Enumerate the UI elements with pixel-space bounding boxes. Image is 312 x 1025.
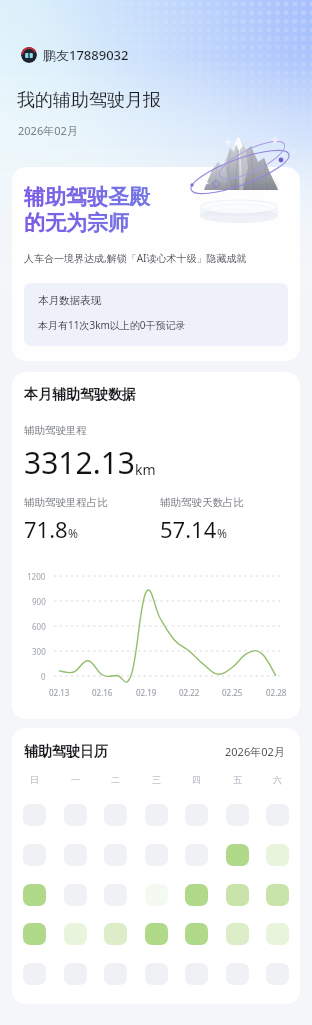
button[interactable] bbox=[64, 804, 87, 826]
staticText: 本月有11次3km以上的0干预记录 bbox=[38, 318, 186, 332]
button[interactable]: 用户头像 bbox=[21, 46, 129, 64]
button[interactable] bbox=[266, 963, 289, 985]
staticText: 900 bbox=[32, 596, 46, 607]
staticText: 人车合一境界达成,解锁「AI读心术十级」隐藏成就 bbox=[24, 251, 247, 265]
staticText: 的无为宗师 bbox=[24, 210, 129, 236]
button[interactable] bbox=[226, 844, 249, 866]
staticText: 57.14 bbox=[160, 514, 217, 544]
button[interactable] bbox=[23, 804, 46, 826]
staticText: 三 bbox=[152, 774, 161, 785]
staticText: 四 bbox=[192, 774, 201, 785]
staticText: 02.19 bbox=[136, 687, 157, 698]
staticText: 02.22 bbox=[179, 687, 200, 698]
button[interactable] bbox=[266, 884, 289, 906]
button[interactable] bbox=[185, 963, 208, 985]
other: 用户头像 bbox=[21, 47, 37, 63]
staticText: 71.8 bbox=[24, 514, 68, 544]
staticText: 1200 bbox=[27, 571, 46, 582]
staticText: 本月数据表现 bbox=[38, 294, 101, 307]
staticText: 我的辅助驾驶月报 bbox=[17, 89, 161, 112]
staticText: 辅助驾驶日历 bbox=[24, 743, 108, 761]
button[interactable] bbox=[104, 844, 127, 866]
button[interactable] bbox=[145, 884, 168, 906]
button[interactable] bbox=[104, 884, 127, 906]
staticText: 600 bbox=[32, 621, 46, 632]
staticText: 300 bbox=[32, 646, 46, 657]
staticText: 六 bbox=[273, 774, 282, 785]
button[interactable] bbox=[226, 804, 249, 826]
button[interactable] bbox=[145, 923, 168, 945]
button[interactable] bbox=[23, 884, 46, 906]
button[interactable] bbox=[185, 804, 208, 826]
staticText: 3312.13 bbox=[24, 442, 135, 483]
button[interactable] bbox=[64, 923, 87, 945]
button[interactable] bbox=[145, 804, 168, 826]
button[interactable] bbox=[64, 844, 87, 866]
staticText: 0 bbox=[41, 671, 46, 682]
staticText: 五 bbox=[233, 774, 242, 785]
button[interactable] bbox=[145, 963, 168, 985]
staticText: km bbox=[135, 460, 156, 479]
button[interactable] bbox=[266, 804, 289, 826]
button[interactable]: 本月数据表现 bbox=[24, 283, 288, 346]
button[interactable] bbox=[23, 923, 46, 945]
button[interactable] bbox=[104, 963, 127, 985]
button[interactable] bbox=[226, 884, 249, 906]
staticText: 02.28 bbox=[266, 687, 287, 698]
staticText: 一 bbox=[71, 774, 80, 785]
staticText: 二 bbox=[111, 774, 120, 785]
staticText: 2026年02月 bbox=[18, 123, 78, 138]
button[interactable] bbox=[23, 963, 46, 985]
staticText: 本月辅助驾驶数据 bbox=[24, 386, 136, 404]
staticText: 02.25 bbox=[222, 687, 243, 698]
staticText: 辅助驾驶里程 bbox=[24, 424, 87, 437]
button[interactable] bbox=[226, 963, 249, 985]
button[interactable] bbox=[185, 884, 208, 906]
staticText: 鹏友17889032 bbox=[43, 46, 129, 64]
button[interactable] bbox=[185, 844, 208, 866]
staticText: 辅助驾驶圣殿 bbox=[24, 184, 150, 210]
button[interactable] bbox=[104, 923, 127, 945]
button[interactable] bbox=[145, 844, 168, 866]
staticText: 02.13 bbox=[49, 687, 70, 698]
staticText: % bbox=[68, 525, 78, 541]
button[interactable] bbox=[185, 923, 208, 945]
button[interactable] bbox=[64, 884, 87, 906]
button[interactable] bbox=[266, 844, 289, 866]
button[interactable] bbox=[226, 923, 249, 945]
button[interactable] bbox=[266, 923, 289, 945]
staticText: 辅助驾驶里程占比 bbox=[24, 496, 108, 509]
button[interactable] bbox=[104, 804, 127, 826]
staticText: 日 bbox=[30, 774, 39, 785]
staticText: 02.16 bbox=[92, 687, 113, 698]
button[interactable] bbox=[64, 963, 87, 985]
staticText: 2026年02月 bbox=[225, 744, 285, 759]
staticText: 辅助驾驶天数占比 bbox=[160, 496, 244, 509]
button[interactable] bbox=[23, 844, 46, 866]
staticText: % bbox=[217, 525, 227, 541]
